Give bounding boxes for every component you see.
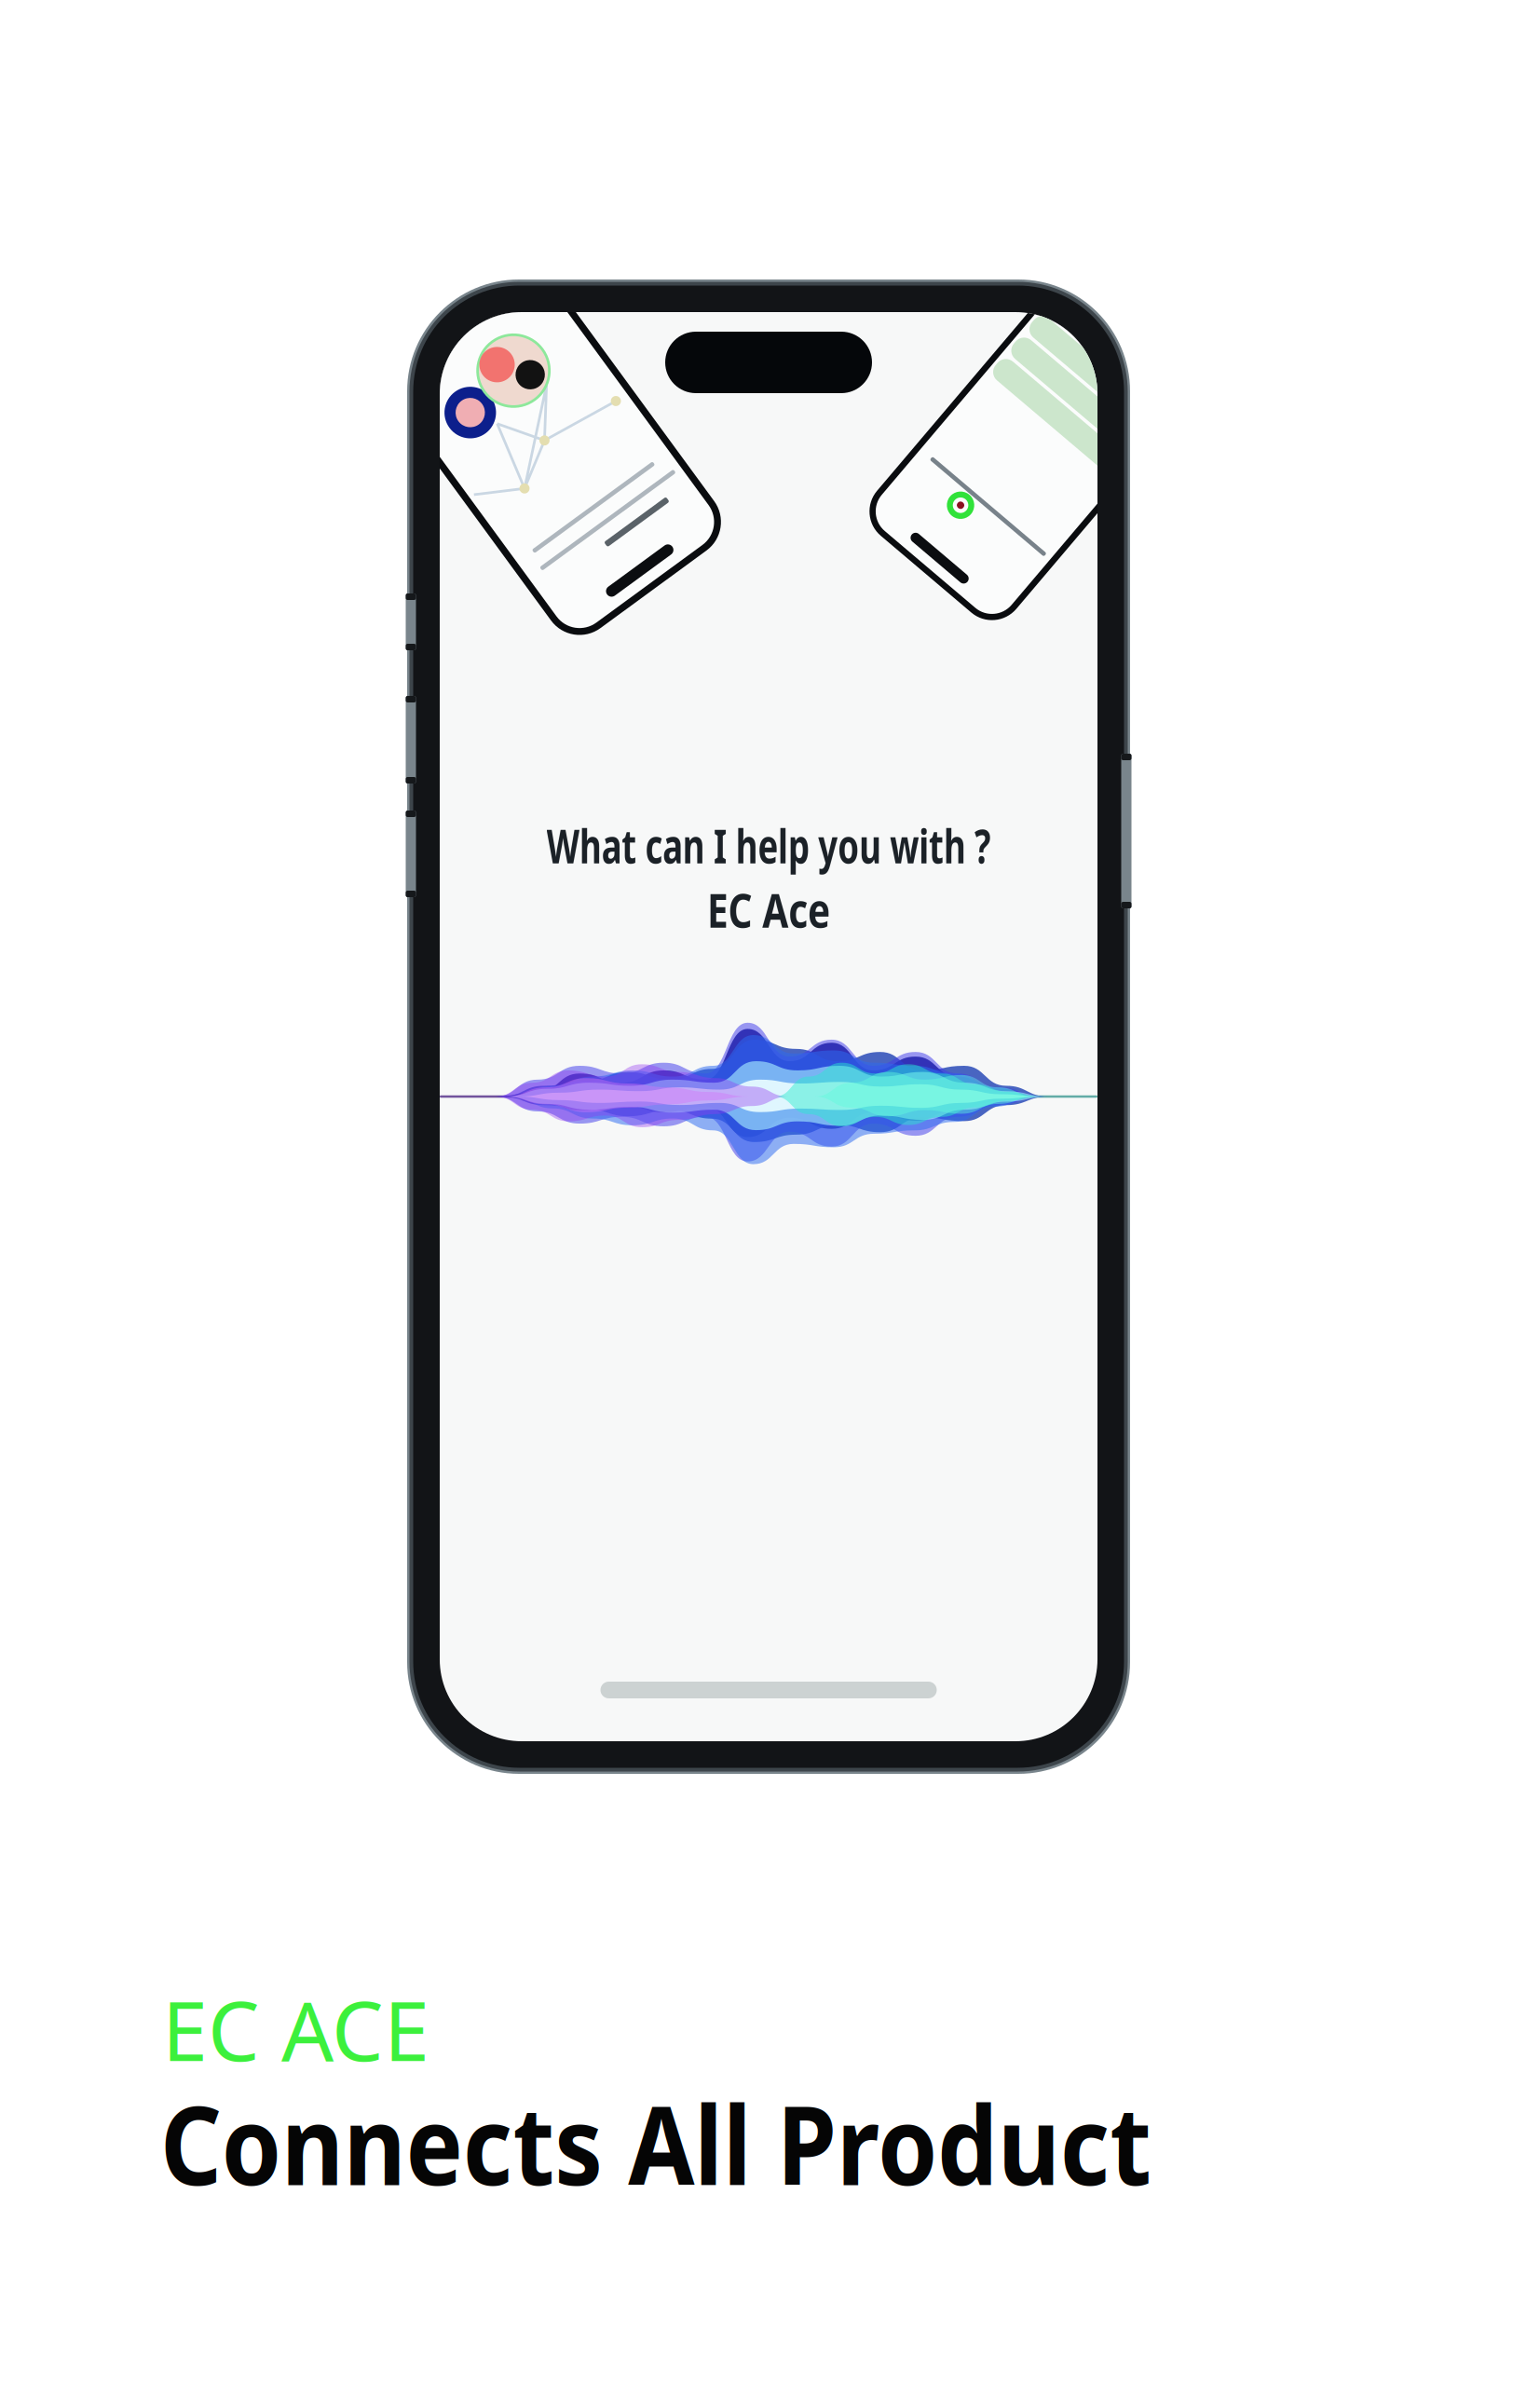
staticText: EC Ace [692, 878, 845, 941]
button[interactable]: Stop listening [440, 1020, 1097, 1173]
staticText: EC ACE [162, 1975, 429, 2084]
staticText: Connects All Product [160, 2070, 1289, 2215]
staticText: What can I help you with ? [460, 814, 1077, 876]
